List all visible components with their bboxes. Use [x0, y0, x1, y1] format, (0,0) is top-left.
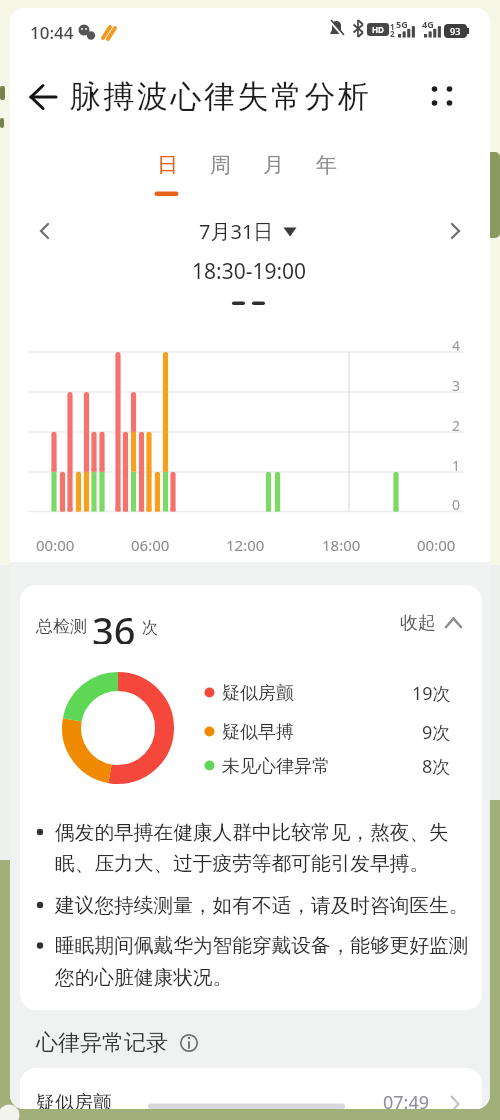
button[interactable]: 年 [226, 145, 426, 185]
staticText: HD [372, 24, 384, 35]
staticText: 4 [452, 336, 461, 355]
button[interactable] [20, 1068, 482, 1109]
button[interactable]: 月 [173, 145, 373, 185]
staticText: 疑似房颤 [222, 682, 294, 705]
staticText: 07:49 [383, 1090, 430, 1109]
staticText: 00:00 [36, 535, 75, 555]
button[interactable]: 周 [120, 145, 320, 185]
staticText: 3 [452, 376, 461, 395]
staticText: 年 [316, 152, 337, 178]
button[interactable] [30, 214, 60, 248]
staticText: 7月31日 [199, 218, 274, 245]
staticText: 0 [452, 495, 461, 514]
button[interactable] [178, 1030, 204, 1056]
staticText: 93 [450, 25, 461, 37]
staticText: 18:00 [322, 535, 361, 555]
staticText: 疑似早搏 [222, 721, 294, 744]
staticText: 月 [263, 152, 284, 178]
staticText: 2 [452, 416, 461, 435]
staticText: 00:00 [417, 535, 456, 555]
staticText: 日 [157, 152, 178, 178]
button[interactable] [20, 585, 482, 1010]
staticText: 眠、压力大、过于疲劳等都可能引发早搏。 [55, 851, 430, 876]
staticText: 06:00 [131, 535, 170, 555]
staticText: 36 [92, 604, 136, 644]
staticText: 周 [210, 152, 231, 178]
button[interactable]: 日 [67, 145, 267, 185]
staticText: 18:30-19:00 [192, 257, 307, 286]
staticText: 疑似房颤 [36, 1091, 112, 1109]
staticText: 5G [396, 18, 408, 30]
staticText: 脉搏波心律失常分析 [70, 77, 372, 116]
staticText: 1 [390, 21, 395, 32]
staticText: 偶发的早搏在健康人群中比较常见，熬夜、失 [55, 820, 449, 845]
staticText: 12:00 [226, 535, 265, 555]
button[interactable]: 7月31日 [199, 211, 274, 251]
staticText: 睡眠期间佩戴华为智能穿戴设备，能够更好监测 [55, 933, 469, 958]
staticText: 您的心脏健康状况。 [55, 965, 233, 990]
staticText: 9次 [422, 720, 451, 745]
staticText: 心律异常记录 [36, 1029, 168, 1057]
button[interactable] [24, 79, 60, 115]
staticText: 2 [390, 28, 395, 39]
staticText: 未见心律异常 [222, 755, 330, 778]
staticText: 19次 [412, 681, 451, 706]
button[interactable] [394, 605, 470, 639]
staticText: 总检测 [36, 616, 87, 637]
staticText: 建议您持续测量，如有不适，请及时咨询医生。 [55, 893, 469, 918]
staticText: 10:44 [30, 21, 74, 44]
staticText: 次 [142, 618, 158, 638]
staticText: 8次 [422, 754, 451, 779]
staticText: 1 [452, 456, 461, 475]
staticText: 收起 [400, 612, 436, 635]
button[interactable] [440, 214, 470, 248]
staticText: 4G [422, 18, 434, 30]
button[interactable] [424, 78, 460, 114]
